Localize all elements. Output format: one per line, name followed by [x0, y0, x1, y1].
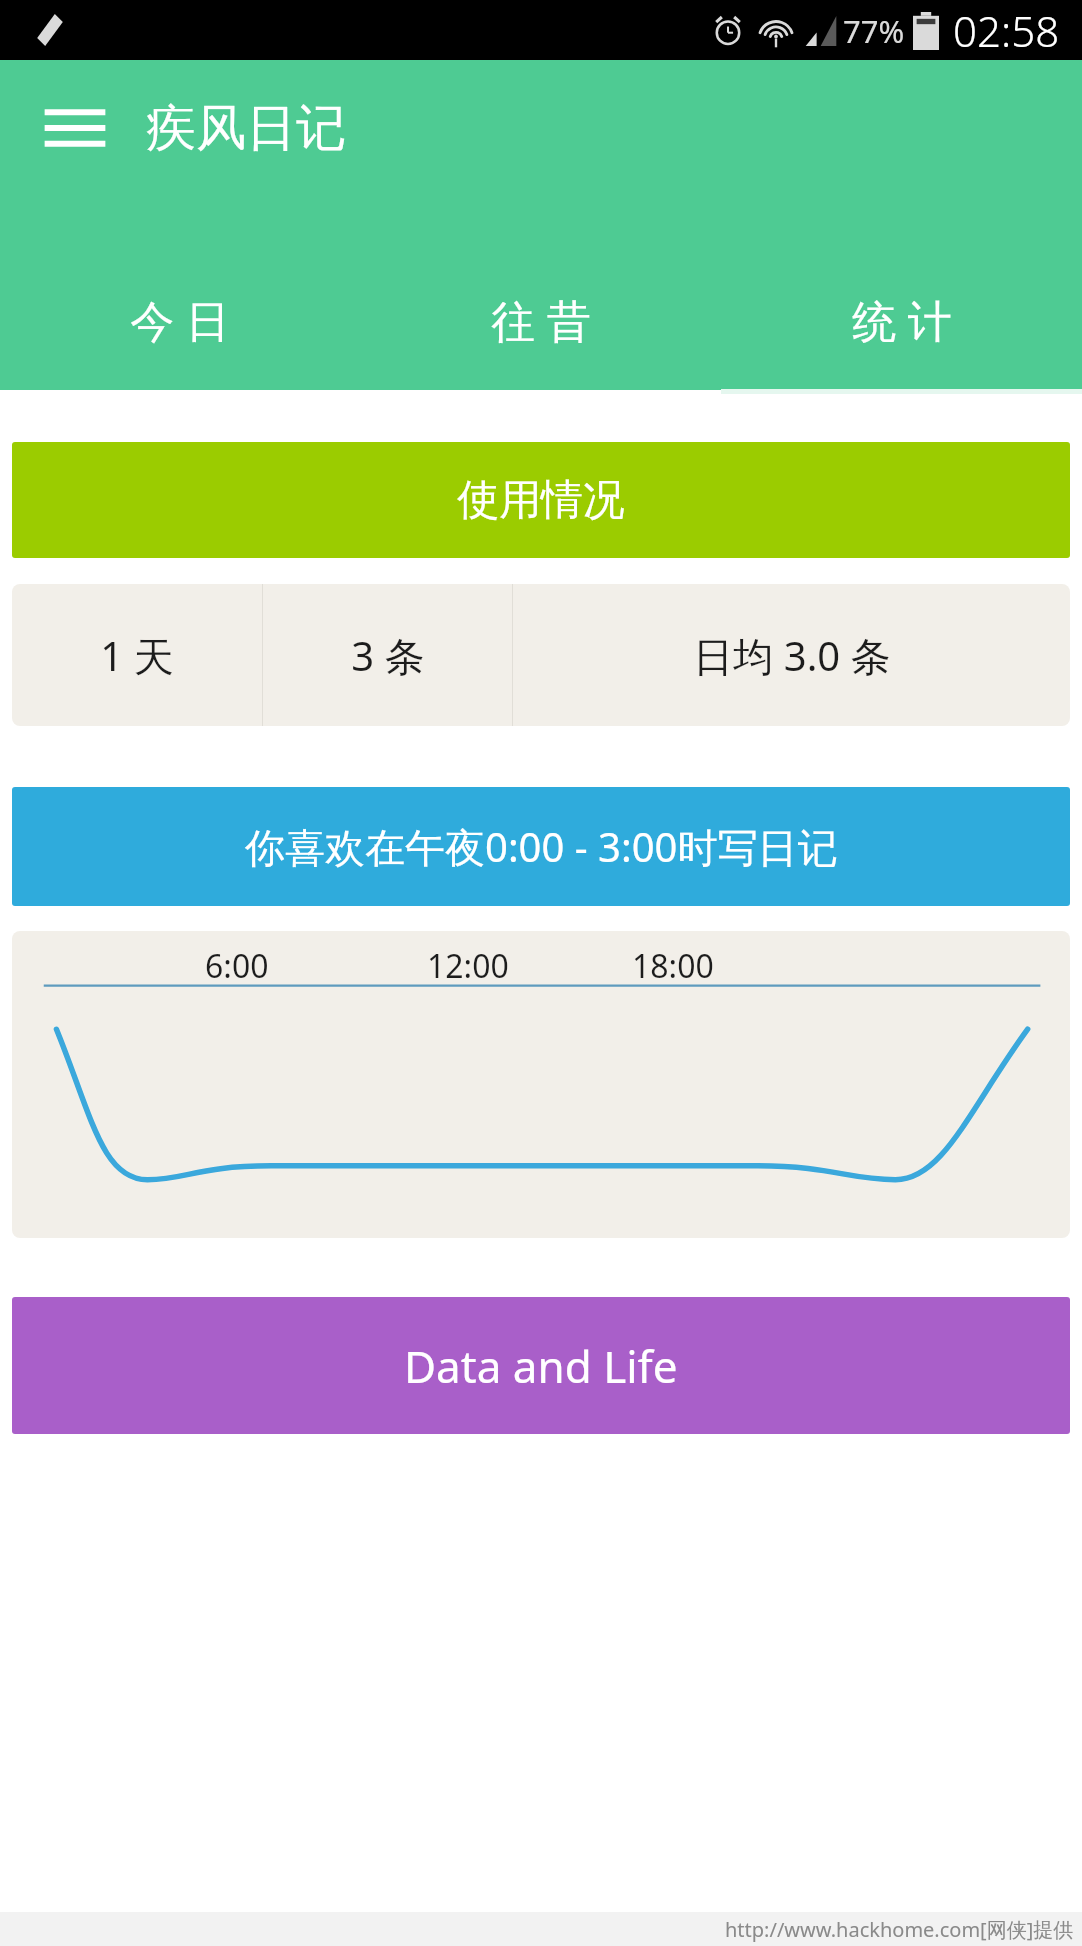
button[interactable]: 统 计 [721, 250, 1082, 390]
staticText: 使用情况 [457, 474, 625, 527]
staticText: Data and Life [404, 1336, 678, 1396]
staticText: 77% [843, 10, 905, 52]
button[interactable]: 使用情况 [12, 442, 1070, 558]
button[interactable]: 往 昔 [360, 250, 721, 390]
button[interactable]: 3 条 [263, 584, 512, 726]
staticText: 往 昔 [491, 290, 591, 350]
staticText: 日均 3.0 条 [693, 628, 891, 683]
button[interactable]: 1 天 [12, 584, 262, 726]
button[interactable]: Menu [42, 95, 108, 161]
staticText: 统 计 [852, 290, 952, 350]
staticText: 18:00 [632, 944, 714, 988]
button[interactable]: 日均 3.0 条 [513, 584, 1070, 726]
staticText: http://www.hackhome.com[网侠]提供 [725, 1916, 1074, 1943]
staticText: 1 天 [100, 628, 174, 683]
staticText: 02:58 [953, 2, 1060, 59]
staticText: 12:00 [427, 944, 509, 988]
button[interactable]: 今 日 [0, 250, 360, 390]
staticText: 疾风日记 [146, 97, 346, 160]
staticText: 3 条 [351, 628, 425, 683]
staticText: 6:00 [205, 944, 269, 988]
staticText: 你喜欢在午夜0:00 - 3:00时写日记 [245, 819, 838, 874]
button[interactable]: Data and Life [12, 1297, 1070, 1434]
staticText: 今 日 [130, 290, 230, 350]
button[interactable]: 你喜欢在午夜0:00 - 3:00时写日记 [12, 787, 1070, 906]
